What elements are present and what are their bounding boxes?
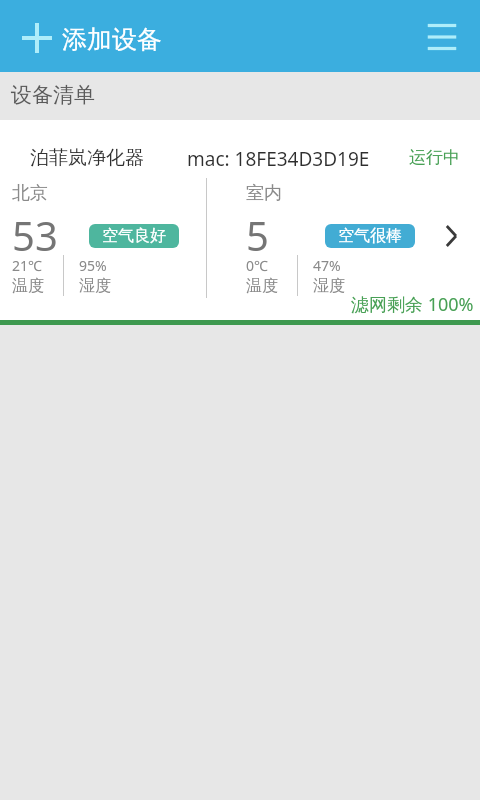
staticText: 21℃ xyxy=(12,256,42,275)
staticText: 5 xyxy=(246,208,269,262)
staticText: 北京 xyxy=(12,182,48,205)
staticText: 湿度 xyxy=(313,276,345,296)
staticText: 空气很棒 xyxy=(338,226,402,246)
staticText: 温度 xyxy=(12,276,44,296)
button[interactable]: 空气很棒 xyxy=(325,224,415,248)
button[interactable]: Device details xyxy=(433,218,469,254)
staticText: mac: 18FE34D3D19E xyxy=(187,146,370,172)
button[interactable]: Menu xyxy=(419,14,465,60)
staticText: 滤网剩余 100% xyxy=(351,292,474,317)
staticText: 泊菲岚净化器 xyxy=(30,146,144,170)
staticText: 0℃ xyxy=(246,256,268,275)
button[interactable]: 空气良好 xyxy=(89,224,179,248)
staticText: 湿度 xyxy=(79,276,111,296)
button[interactable]: 添加设备 xyxy=(14,13,162,63)
staticText: 空气良好 xyxy=(102,226,166,246)
staticText: 添加设备 xyxy=(62,24,162,55)
button[interactable]: 泊菲岚净化器 xyxy=(0,120,480,325)
staticText: 温度 xyxy=(246,276,278,296)
staticText: 53 xyxy=(12,208,58,262)
staticText: 95% xyxy=(79,256,107,275)
staticText: 室内 xyxy=(246,182,282,205)
staticText: 运行中 xyxy=(409,147,460,168)
staticText: 设备清单 xyxy=(11,82,95,108)
staticText: 47% xyxy=(313,256,341,275)
